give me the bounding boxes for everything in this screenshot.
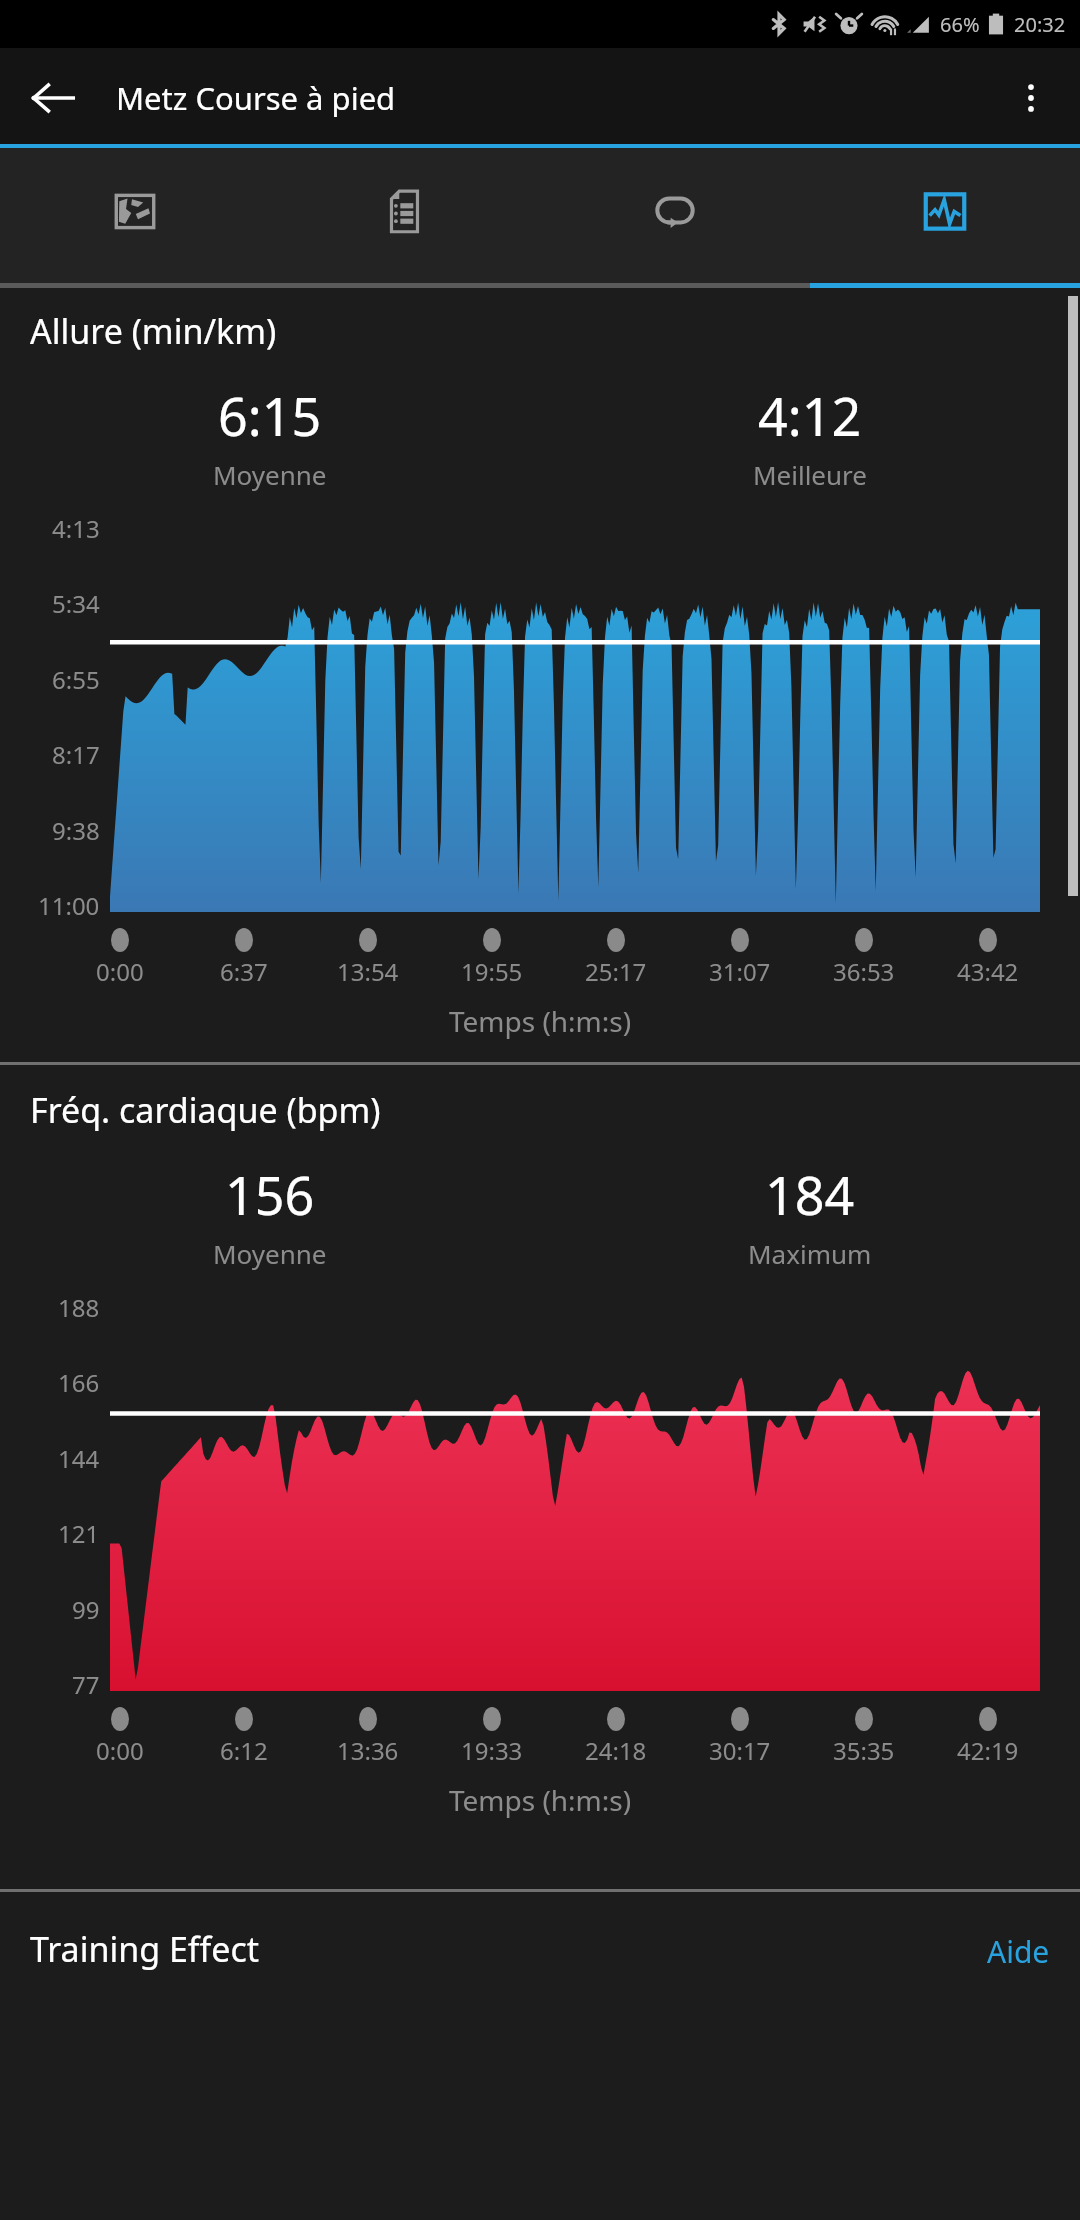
staticText: 166 — [58, 1366, 100, 1399]
staticText: 8:17 — [52, 738, 100, 771]
staticText: Fréq. cardiaque (bpm) — [30, 1087, 381, 1133]
staticText: 144 — [58, 1442, 100, 1475]
staticText: 6:37 — [220, 955, 268, 988]
button[interactable]: Allure (min/km) — [0, 288, 1080, 1062]
staticText: 42:19 — [957, 1734, 1019, 1767]
staticText: Training Effect — [30, 1926, 260, 1972]
staticText: 19:55 — [461, 955, 523, 988]
staticText: 66% — [940, 11, 980, 38]
button[interactable]: Back — [22, 67, 84, 129]
staticText: 156 — [225, 1159, 315, 1230]
staticText: 19:33 — [461, 1734, 523, 1767]
staticText: 0:00 — [96, 955, 144, 988]
button[interactable]: Laps — [540, 148, 810, 288]
button[interactable]: Training Effect — [30, 1892, 1050, 1972]
staticText: 121 — [58, 1517, 100, 1550]
staticText: 43:42 — [957, 955, 1019, 988]
button[interactable]: Fréq. cardiaque (bpm) — [0, 1065, 1080, 1889]
staticText: Metz Course à pied — [116, 77, 396, 119]
staticText: Moyenne — [213, 1236, 327, 1271]
staticText: 9:38 — [52, 814, 100, 847]
staticText: Temps (h:m:s) — [0, 1781, 1080, 1819]
staticText: 11:00 — [38, 889, 100, 922]
staticText: 4:12 — [758, 380, 862, 451]
staticText: 184 — [765, 1159, 855, 1230]
staticText: 24:18 — [585, 1734, 647, 1767]
staticText: 25:17 — [585, 955, 647, 988]
staticText: Moyenne — [213, 457, 327, 492]
staticText: Meilleure — [753, 457, 867, 492]
staticText: 36:53 — [833, 955, 895, 988]
staticText: Maximum — [748, 1236, 872, 1271]
button[interactable]: Charts — [810, 148, 1080, 288]
staticText: Aide — [987, 1931, 1050, 1972]
staticText: 188 — [58, 1291, 100, 1324]
staticText: 6:55 — [52, 663, 100, 696]
staticText: 13:36 — [337, 1734, 399, 1767]
button[interactable]: More options — [1000, 67, 1062, 129]
staticText: 20:32 — [1014, 11, 1066, 38]
staticText: 6:12 — [220, 1734, 268, 1767]
staticText: 4:13 — [52, 512, 100, 545]
staticText: 35:35 — [833, 1734, 895, 1767]
staticText: 31:07 — [709, 955, 771, 988]
staticText: Temps (h:m:s) — [0, 1002, 1080, 1040]
staticText: 6:15 — [218, 380, 322, 451]
staticText: 99 — [72, 1593, 100, 1626]
staticText: 13:54 — [337, 955, 399, 988]
staticText: 5:34 — [52, 587, 100, 620]
staticText: 77 — [72, 1668, 100, 1701]
button[interactable]: Details — [270, 148, 540, 288]
staticText: 30:17 — [709, 1734, 771, 1767]
button[interactable]: Map — [0, 148, 270, 288]
staticText: Allure (min/km) — [30, 308, 277, 354]
staticText: 0:00 — [96, 1734, 144, 1767]
